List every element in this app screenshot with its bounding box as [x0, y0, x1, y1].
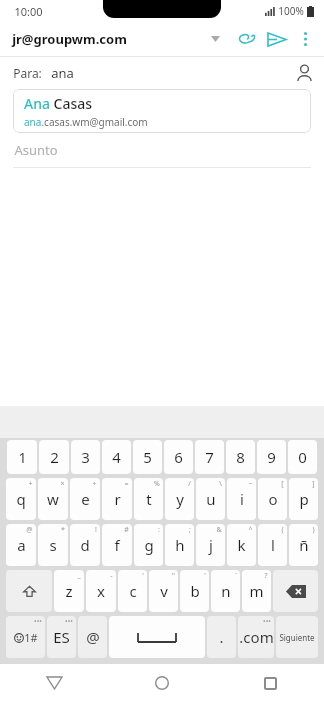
staticText: ^	[248, 525, 253, 535]
button[interactable]: m	[242, 570, 271, 612]
button[interactable]: n	[211, 570, 240, 612]
button[interactable]: a	[6, 524, 36, 566]
button[interactable]: 8	[226, 440, 255, 474]
button[interactable]: w	[38, 478, 68, 520]
staticText: ana	[51, 64, 74, 82]
staticText: *	[61, 525, 65, 535]
staticText: 6	[174, 447, 183, 467]
staticText: l	[271, 535, 275, 555]
button[interactable]: .	[207, 616, 236, 658]
button[interactable]: 3	[71, 440, 100, 474]
button[interactable]: Asunto	[0, 133, 324, 168]
staticText: \	[219, 479, 222, 489]
staticText: ñ	[299, 535, 309, 555]
staticText: v	[160, 581, 168, 601]
button[interactable]: l	[258, 524, 287, 566]
button[interactable]: back	[273, 570, 318, 612]
staticText: -	[110, 571, 113, 581]
button[interactable]: Ana Casas	[13, 89, 311, 133]
staticText: 1	[18, 447, 27, 467]
button[interactable]: 7	[195, 440, 224, 474]
button[interactable]: x	[86, 570, 116, 612]
staticText: jr@groupwm.com	[12, 30, 127, 48]
staticText: 2	[50, 447, 59, 467]
staticText: h	[175, 535, 185, 555]
button[interactable]: b	[180, 570, 209, 612]
button[interactable]: Home	[108, 664, 216, 702]
staticText: 9	[267, 447, 276, 467]
button[interactable]: @	[78, 616, 107, 658]
button[interactable]: p	[289, 478, 318, 520]
button[interactable]: Back	[0, 664, 108, 702]
button[interactable]: z	[54, 570, 84, 612]
button[interactable]: u	[196, 478, 225, 520]
staticText: '	[142, 571, 144, 581]
button[interactable]: Choose contact	[289, 58, 319, 88]
staticText: 10:00	[14, 4, 43, 19]
button[interactable]: Expand account	[204, 28, 226, 50]
button[interactable]: s	[38, 524, 68, 566]
button[interactable]: jr@groupwm.com	[12, 30, 204, 48]
button[interactable]: emoji	[6, 616, 45, 658]
staticText: ]	[312, 479, 315, 489]
staticText: ?	[264, 571, 268, 581]
button[interactable]: k	[227, 524, 256, 566]
button[interactable]: shift	[6, 570, 52, 612]
staticText: •••	[34, 617, 42, 627]
staticText: a	[17, 535, 26, 555]
staticText: .	[219, 627, 224, 647]
staticText: q	[16, 489, 26, 509]
staticText: @	[26, 525, 33, 535]
staticText: .com	[239, 627, 274, 647]
button[interactable]: g	[134, 524, 163, 566]
staticText: 5	[143, 447, 152, 467]
button[interactable]: 9	[257, 440, 286, 474]
button[interactable]: y	[165, 478, 194, 520]
button[interactable]: t	[134, 478, 163, 520]
button[interactable]: c	[118, 570, 147, 612]
button[interactable]: 6	[164, 440, 193, 474]
staticText: Siguiente	[279, 632, 315, 643]
staticText: 100%	[278, 4, 304, 18]
button[interactable]: r	[102, 478, 132, 520]
button[interactable]: 5	[133, 440, 162, 474]
button[interactable]: 4	[102, 440, 131, 474]
staticText: Ana Casas	[24, 94, 93, 113]
staticText: w	[47, 489, 59, 509]
staticText: "	[172, 571, 175, 581]
button[interactable]: j	[196, 524, 225, 566]
staticText: &	[216, 525, 222, 535]
button[interactable]: e	[70, 478, 100, 520]
button[interactable]: space	[109, 616, 205, 658]
button[interactable]: h	[165, 524, 194, 566]
button[interactable]: v	[149, 570, 178, 612]
staticText: •••	[263, 617, 271, 627]
button[interactable]: 0	[288, 440, 317, 474]
button[interactable]: ñ	[289, 524, 318, 566]
button[interactable]: Attach file	[232, 25, 260, 53]
button[interactable]: .com	[238, 616, 274, 658]
staticText: 1#	[24, 630, 38, 645]
button[interactable]: f	[102, 524, 132, 566]
staticText: ES	[53, 627, 70, 647]
staticText: i	[240, 489, 244, 509]
button[interactable]: d	[70, 524, 100, 566]
button[interactable]: Send	[262, 24, 292, 54]
button[interactable]: 2	[39, 440, 69, 474]
staticText: '	[204, 571, 206, 581]
staticText: :	[158, 525, 160, 535]
button[interactable]: ES	[47, 616, 76, 658]
button[interactable]: Para:	[0, 57, 324, 89]
button[interactable]: 1	[7, 440, 37, 474]
button[interactable]: i	[227, 478, 256, 520]
staticText: +	[28, 479, 33, 489]
button[interactable]: q	[6, 478, 36, 520]
staticText: Para:	[13, 65, 42, 81]
staticText: y	[176, 489, 184, 509]
button[interactable]: Siguiente	[276, 616, 318, 658]
staticText: d	[80, 535, 90, 555]
button[interactable]: More options	[292, 26, 318, 52]
button[interactable]: o	[258, 478, 287, 520]
button[interactable]: Recent apps	[216, 664, 324, 702]
staticText: r	[114, 489, 121, 509]
